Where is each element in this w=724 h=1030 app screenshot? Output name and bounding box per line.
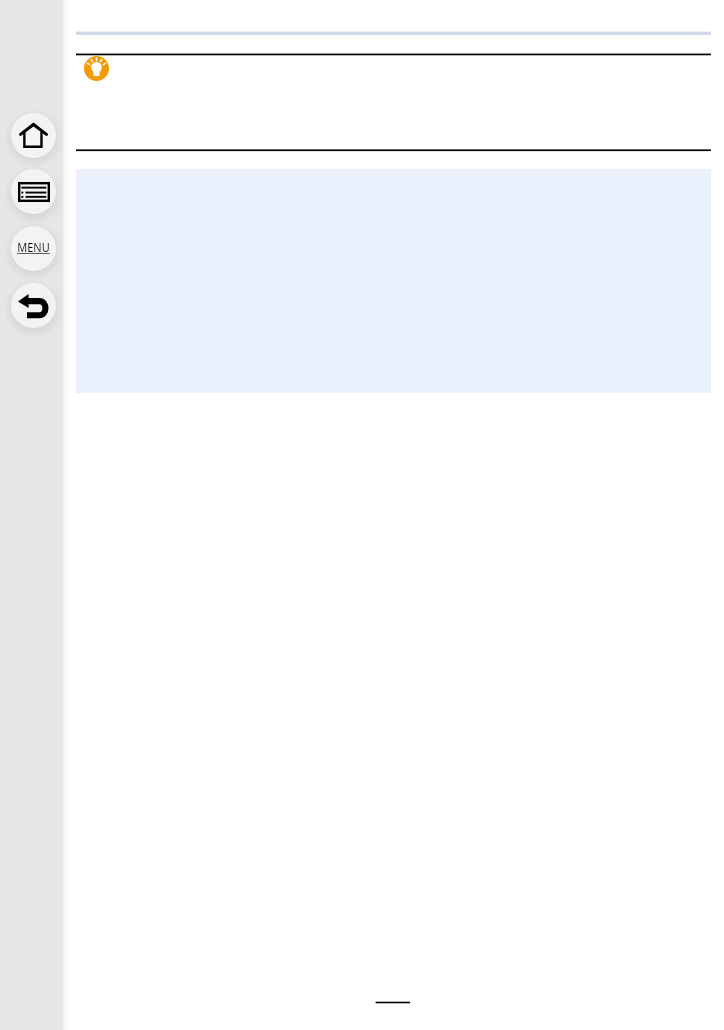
button[interactable]: Back [11,283,56,328]
button[interactable]: Table of contents [11,169,56,214]
staticText: MENU [17,239,50,256]
button[interactable]: Menu [11,226,56,271]
button[interactable]: Home [11,113,56,158]
